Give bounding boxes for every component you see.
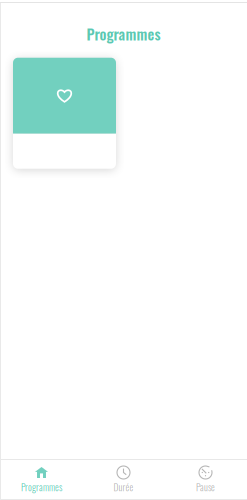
button[interactable]: Pause [164, 460, 246, 500]
staticText: Pause [196, 480, 215, 494]
staticText: Programmes [86, 23, 160, 45]
button[interactable]: Programmes [0, 460, 82, 500]
button[interactable] [13, 58, 116, 169]
staticText: Programmes [21, 480, 62, 494]
button[interactable]: Durée [82, 460, 164, 500]
staticText: Durée [113, 480, 133, 494]
